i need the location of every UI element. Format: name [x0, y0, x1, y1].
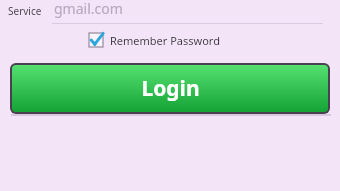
staticText: Service — [8, 4, 42, 18]
button[interactable]: gmail.com — [52, 1, 323, 24]
button[interactable]: Remember Password checkbox — [88, 32, 220, 48]
staticText: Remember Password — [110, 33, 220, 48]
staticText: Login — [141, 74, 200, 103]
other: Remember Password checkbox — [88, 32, 104, 48]
staticText: gmail.com — [54, 0, 123, 18]
button[interactable]: Login — [12, 65, 328, 112]
